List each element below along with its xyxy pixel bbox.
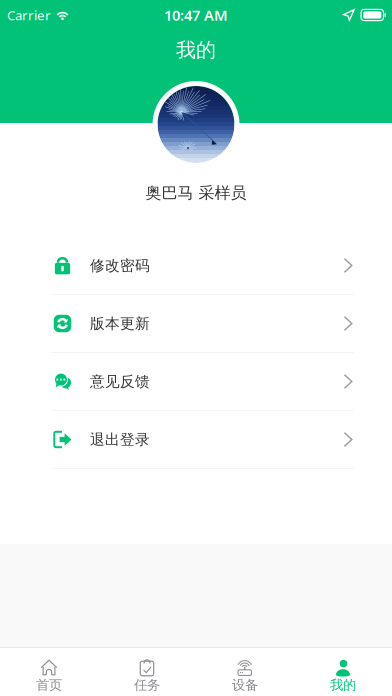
staticText: 我的 — [176, 38, 216, 62]
button[interactable]: 版本更新 — [0, 295, 392, 353]
staticText: 10:47 AM — [164, 5, 228, 25]
staticText: 版本更新 — [90, 314, 150, 332]
staticText: 首页 — [36, 677, 62, 693]
button[interactable]: 任务 — [98, 648, 196, 696]
button[interactable]: 设备 — [196, 648, 294, 696]
button[interactable]: 意见反馈 — [0, 353, 392, 411]
staticText: 修改密码 — [90, 256, 150, 274]
staticText: 任务 — [134, 677, 160, 693]
button[interactable]: 首页 — [0, 648, 98, 696]
staticText: 退出登录 — [90, 430, 150, 448]
staticText: 奥巴马 采样员 — [145, 183, 246, 203]
staticText: 设备 — [232, 677, 258, 693]
button[interactable]: 我的 — [294, 648, 392, 696]
button[interactable]: 修改密码 — [0, 237, 392, 295]
staticText: Carrier — [7, 6, 51, 24]
button[interactable]: 退出登录 — [0, 411, 392, 469]
staticText: 意见反馈 — [90, 372, 150, 390]
staticText: 我的 — [330, 677, 356, 693]
